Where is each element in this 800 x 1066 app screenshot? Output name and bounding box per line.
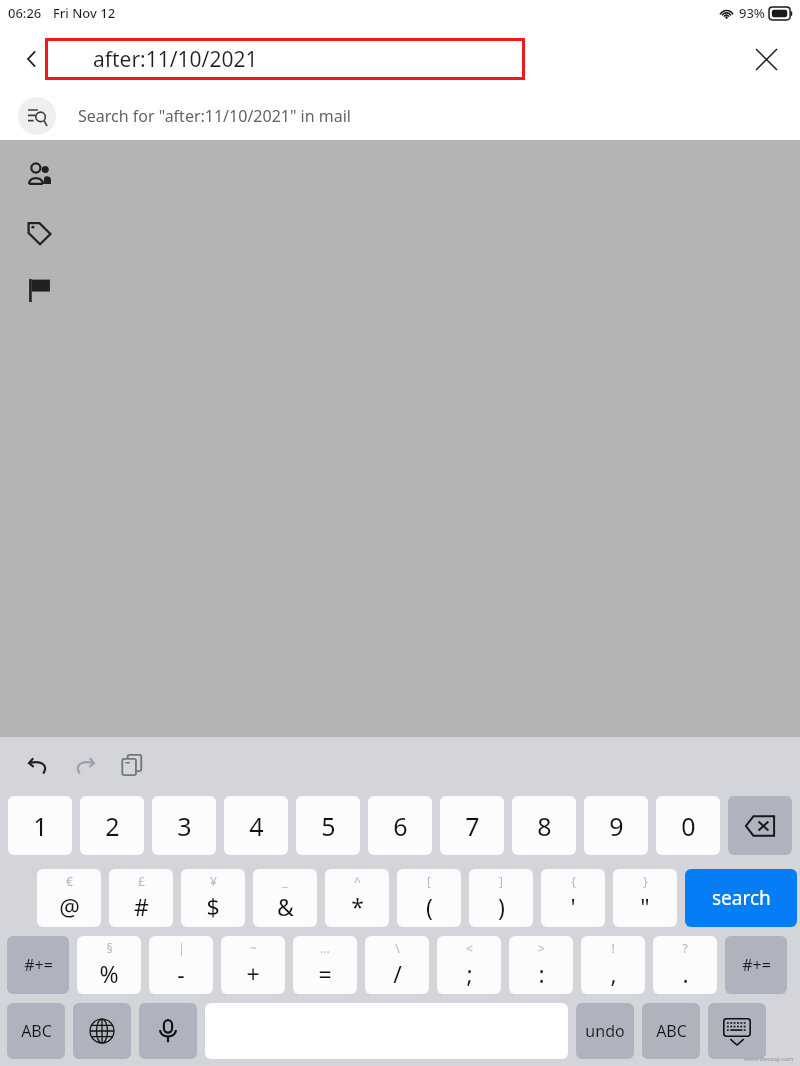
staticText: ] <box>499 873 503 889</box>
staticText: 4 <box>249 809 264 843</box>
staticText: + <box>246 958 260 989</box>
staticText: ~ <box>250 940 257 956</box>
button[interactable]: Paste <box>114 747 150 783</box>
staticText: > <box>538 940 545 956</box>
staticText: ABC <box>21 1020 52 1042</box>
button[interactable]: 2 <box>80 796 144 855</box>
staticText: 0 <box>681 809 696 843</box>
staticText: Search for "after:11/10/2021" in mail <box>78 105 351 127</box>
button[interactable]: Search for "after:11/10/2021" in mail <box>0 92 800 140</box>
staticText: | <box>178 940 185 956</box>
button[interactable]: after:11/10/2021 <box>45 38 525 80</box>
staticText: 2 <box>105 809 120 843</box>
button[interactable]: ? <box>653 936 717 994</box>
staticText: $ <box>206 891 220 922</box>
button[interactable]: ] <box>469 869 533 927</box>
staticText: # <box>134 891 149 922</box>
button[interactable]: #+= <box>725 936 787 994</box>
button[interactable]: … <box>293 936 357 994</box>
button[interactable]: 8 <box>512 796 576 855</box>
button[interactable]: Voice input <box>139 1003 197 1059</box>
button[interactable]: | <box>149 936 213 994</box>
staticText: : <box>538 958 545 989</box>
button[interactable]: Change keyboard language <box>73 1003 131 1059</box>
staticText: _ <box>282 873 288 889</box>
button[interactable]: } <box>613 869 677 927</box>
staticText: ( <box>426 891 433 922</box>
staticText: 9 <box>609 809 624 843</box>
button[interactable]: Hide keyboard <box>708 1003 766 1059</box>
staticText: 1 <box>33 809 48 843</box>
button[interactable]: { <box>541 869 605 927</box>
staticText: @ <box>59 891 80 922</box>
staticText: < <box>466 940 473 956</box>
button[interactable]: ABC <box>7 1003 65 1059</box>
button[interactable]: #+= <box>7 936 69 994</box>
staticText: % <box>99 958 119 989</box>
staticText: #+= <box>742 954 771 976</box>
button[interactable]: £ <box>109 869 173 927</box>
staticText: after:11/10/2021 <box>93 45 258 74</box>
staticText: § <box>106 940 113 956</box>
staticText: 7 <box>465 809 480 843</box>
button[interactable]: 9 <box>584 796 648 855</box>
button[interactable]: ^ <box>325 869 389 927</box>
staticText: 3 <box>177 809 192 843</box>
button[interactable]: 3 <box>152 796 216 855</box>
staticText: £ <box>138 873 145 889</box>
staticText: 06:26 <box>8 4 42 22</box>
staticText: www.dessug.com <box>744 1055 794 1063</box>
staticText: 93% <box>739 4 765 22</box>
button[interactable]: ~ <box>221 936 285 994</box>
staticText: search <box>712 885 771 911</box>
staticText: ! <box>611 940 615 956</box>
button[interactable]: Labels <box>20 214 58 252</box>
button[interactable]: 1 <box>8 796 72 855</box>
staticText: { <box>571 873 576 889</box>
staticText: [ <box>427 873 431 889</box>
staticText: … <box>320 940 330 956</box>
staticText: 6 <box>393 809 408 843</box>
staticText: € <box>66 873 73 889</box>
button[interactable]: _ <box>253 869 317 927</box>
staticText: 5 <box>321 809 336 843</box>
button[interactable]: Undo <box>20 747 56 783</box>
button[interactable]: \ <box>365 936 429 994</box>
staticText: undo <box>585 1020 625 1042</box>
staticText: ; <box>466 958 473 989</box>
button[interactable]: > <box>509 936 573 994</box>
button[interactable]: [ <box>397 869 461 927</box>
staticText: & <box>277 891 294 922</box>
staticText: ^ <box>354 873 361 889</box>
staticText: = <box>318 958 332 989</box>
button[interactable]: Backspace <box>728 796 792 855</box>
button[interactable]: Clear search <box>746 39 786 79</box>
button[interactable]: 0 <box>656 796 720 855</box>
staticText: ? <box>682 940 688 956</box>
button[interactable]: Back <box>14 41 50 77</box>
button[interactable]: § <box>77 936 141 994</box>
button[interactable]: 4 <box>224 796 288 855</box>
button[interactable]: Flagged <box>20 271 58 309</box>
button[interactable]: 7 <box>440 796 504 855</box>
staticText: 8 <box>537 809 552 843</box>
button[interactable]: search <box>685 869 797 927</box>
staticText: Fri Nov 12 <box>53 4 116 22</box>
button[interactable]: Contacts <box>20 155 58 193</box>
button[interactable]: undo <box>576 1003 634 1059</box>
button[interactable]: Redo <box>67 747 103 783</box>
staticText: ' <box>570 891 576 922</box>
staticText: / <box>393 958 402 989</box>
staticText: ABC <box>656 1020 687 1042</box>
button[interactable]: ! <box>581 936 645 994</box>
staticText: } <box>643 873 648 889</box>
button[interactable]: ¥ <box>181 869 245 927</box>
button[interactable]: € <box>37 869 101 927</box>
button[interactable]: < <box>437 936 501 994</box>
button[interactable]: ABC <box>642 1003 700 1059</box>
button[interactable]: 5 <box>296 796 360 855</box>
staticText: . <box>682 958 689 989</box>
staticText: ¥ <box>210 873 217 889</box>
button[interactable]: 6 <box>368 796 432 855</box>
